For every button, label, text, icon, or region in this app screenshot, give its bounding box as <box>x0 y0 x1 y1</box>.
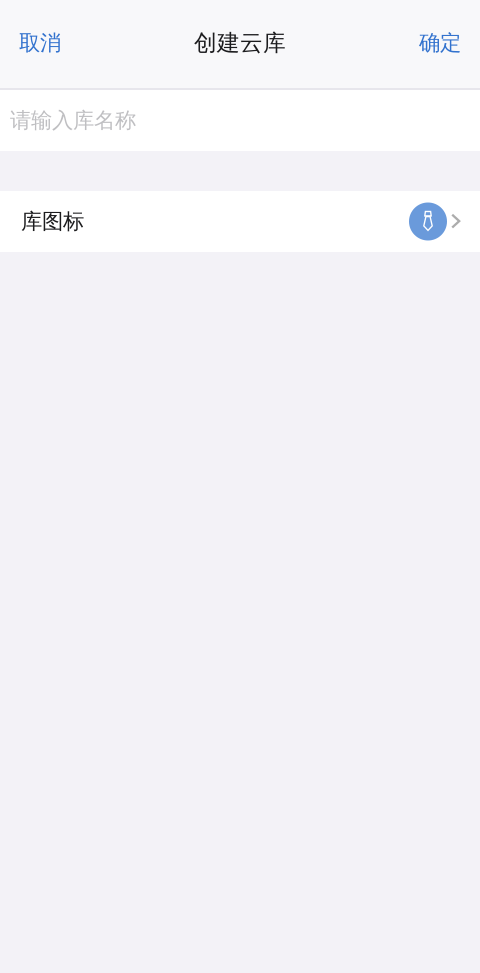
staticText: 确定 <box>419 30 461 56</box>
staticText: 库图标 <box>21 208 84 235</box>
button[interactable]: 请输入库名称 <box>0 90 480 151</box>
staticText: 取消 <box>19 30 61 56</box>
button[interactable]: 取消 <box>0 0 77 88</box>
staticText: 请输入库名称 <box>10 107 136 134</box>
button[interactable]: 库图标 <box>0 191 480 252</box>
button[interactable]: 确定 <box>403 0 480 88</box>
staticText: 创建云库 <box>194 29 286 57</box>
